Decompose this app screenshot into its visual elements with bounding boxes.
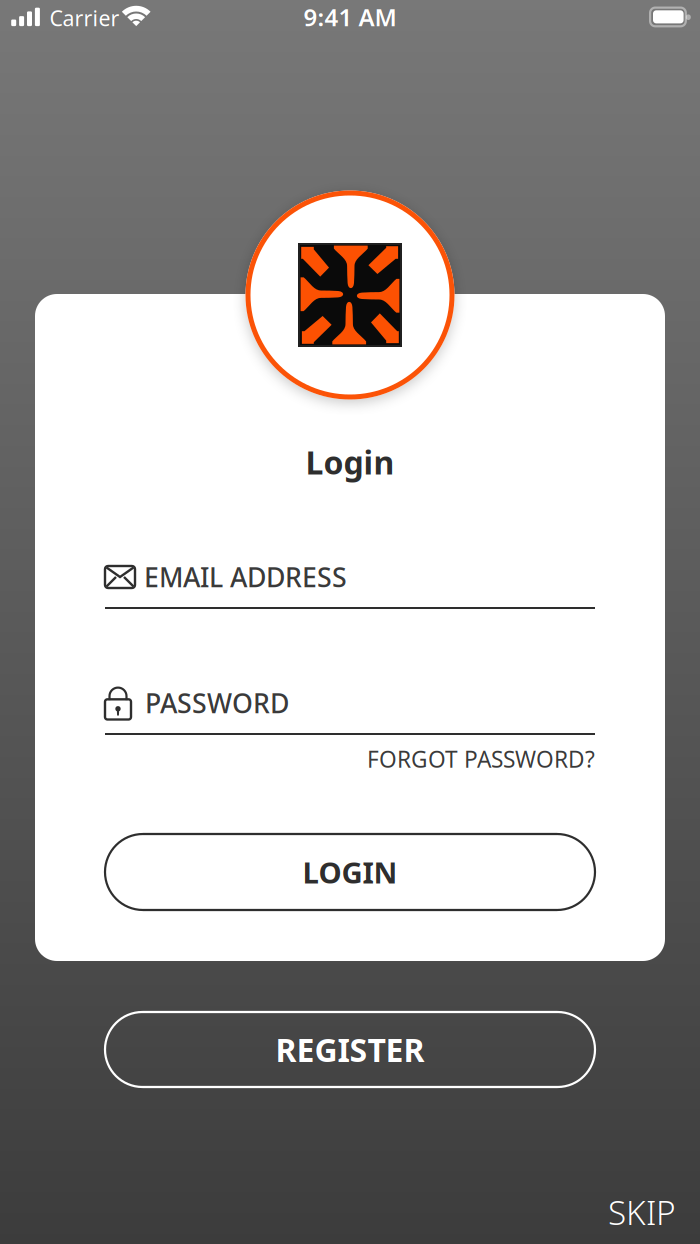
staticText: Login — [305, 441, 394, 483]
button[interactable]: SKIP — [540, 1190, 676, 1234]
button[interactable]: REGISTER — [105, 1012, 595, 1087]
staticText: SKIP — [608, 1190, 676, 1234]
staticText: REGISTER — [275, 1028, 424, 1071]
staticText: LOGIN — [302, 852, 397, 891]
staticText: EMAIL ADDRESS — [144, 559, 347, 595]
staticText: Carrier — [49, 4, 119, 32]
staticText: 9:41 AM — [303, 1, 396, 33]
staticText: PASSWORD — [145, 685, 289, 721]
staticText: FORGOT PASSWORD? — [367, 744, 595, 774]
button[interactable]: LOGIN — [105, 834, 595, 910]
button[interactable]: FORGOT PASSWORD? — [105, 744, 595, 774]
